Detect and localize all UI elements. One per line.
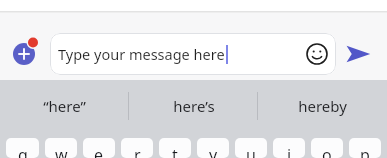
button[interactable]: p <box>349 138 381 158</box>
staticText: u <box>246 144 256 158</box>
button[interactable]: t <box>159 138 191 158</box>
staticText: w <box>55 144 68 158</box>
button[interactable]: “here” <box>0 80 129 131</box>
staticText: i <box>287 144 292 158</box>
button[interactable]: Type your message here <box>50 33 336 75</box>
staticText: y <box>209 144 218 158</box>
button[interactable]: here’s <box>129 80 258 131</box>
button[interactable]: w <box>45 138 77 158</box>
button[interactable]: i <box>273 138 305 158</box>
staticText: e <box>94 144 104 158</box>
staticText: hereby <box>298 96 347 116</box>
staticText: q <box>18 144 28 158</box>
staticText: r <box>134 144 141 158</box>
button[interactable]: Send <box>340 36 376 72</box>
button[interactable]: hereby <box>258 80 387 131</box>
button[interactable]: r <box>121 138 153 158</box>
button[interactable]: e <box>83 138 115 158</box>
button[interactable]: q <box>6 138 39 158</box>
staticText: p <box>360 144 370 158</box>
button[interactable]: u <box>235 138 267 158</box>
button[interactable]: y <box>197 138 229 158</box>
staticText: Type your message here <box>58 44 225 64</box>
button[interactable]: Add attachment <box>8 36 42 70</box>
button[interactable]: Emoji <box>300 37 334 71</box>
button[interactable]: o <box>311 138 343 158</box>
staticText: here’s <box>173 96 215 116</box>
staticText: “here” <box>43 96 86 116</box>
staticText: o <box>322 144 332 158</box>
staticText: t <box>172 144 178 158</box>
